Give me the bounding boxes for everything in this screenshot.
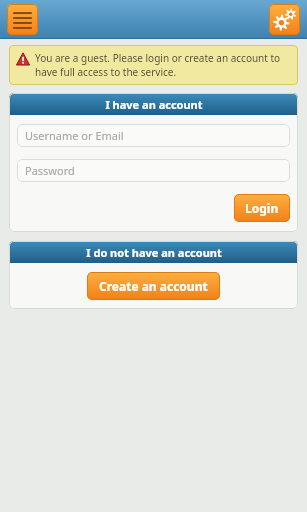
staticText: I have an account: [105, 97, 203, 112]
staticText: Password: [25, 163, 75, 178]
button[interactable]: Settings: [269, 4, 300, 35]
button[interactable]: Create an account: [87, 272, 220, 300]
staticText: Username or Email: [25, 128, 124, 143]
button[interactable]: Login: [234, 194, 290, 222]
button[interactable]: Password: [17, 159, 290, 182]
button[interactable]: Menu: [7, 4, 38, 35]
staticText: Create an account: [99, 278, 208, 294]
staticText: Login: [245, 200, 279, 216]
button[interactable]: Username or Email: [17, 124, 290, 147]
staticText: I do not have an account: [86, 245, 222, 260]
staticText: You are a guest. Please login or create …: [35, 51, 291, 79]
